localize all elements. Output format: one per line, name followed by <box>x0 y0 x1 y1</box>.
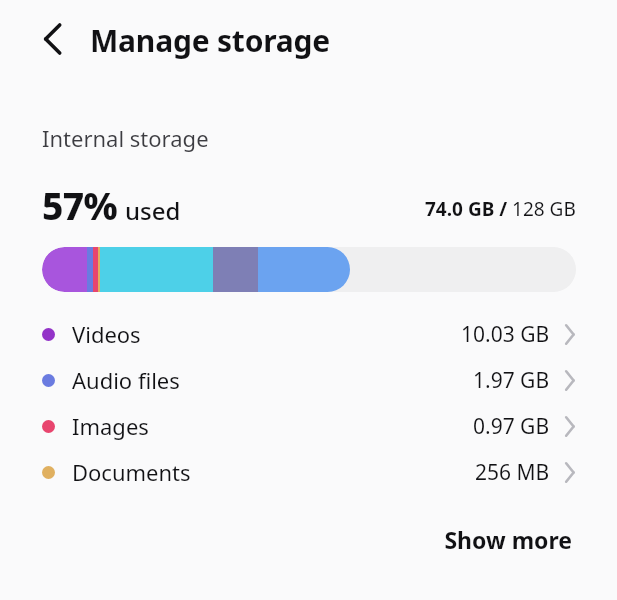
staticText: 10.03 GB <box>461 320 550 349</box>
staticText: 256 MB <box>475 458 550 487</box>
staticText: Documents <box>72 457 191 487</box>
button[interactable]: Documents <box>0 449 617 495</box>
staticText: Audio files <box>72 365 180 395</box>
button[interactable]: Videos <box>0 311 617 357</box>
staticText: Show more <box>444 524 572 555</box>
button[interactable]: Audio files <box>0 357 617 403</box>
button[interactable]: Show more <box>440 518 576 561</box>
staticText: Videos <box>72 319 141 349</box>
staticText: 1.97 GB <box>473 366 550 395</box>
staticText: used <box>125 194 181 227</box>
staticText: Images <box>72 411 149 441</box>
staticText: 57% <box>42 180 118 230</box>
staticText: Internal storage <box>42 123 209 153</box>
staticText: 0.97 GB <box>473 412 550 441</box>
button[interactable]: Images <box>0 403 617 449</box>
staticText: 74.0 GB / 128 GB <box>425 196 576 222</box>
staticText: Manage storage <box>90 20 331 61</box>
button[interactable]: Back <box>26 11 82 67</box>
